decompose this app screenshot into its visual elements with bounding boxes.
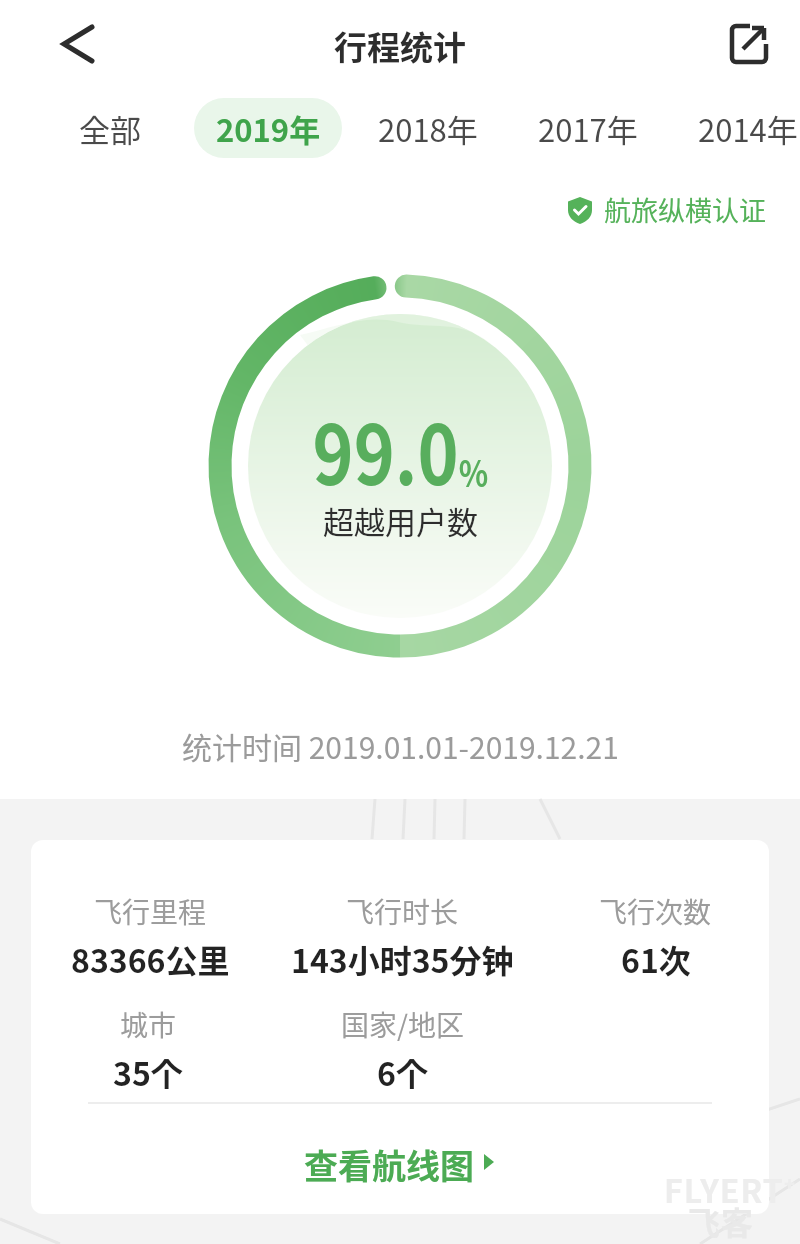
staticText: 飞行次数 (599, 891, 712, 932)
staticText: 查看航线图 (304, 1140, 474, 1184)
staticText: 全部 (79, 106, 141, 151)
button[interactable] (726, 22, 770, 66)
button[interactable]: 2014年 (668, 98, 800, 158)
button[interactable] (56, 22, 100, 66)
staticText: 统计时间 2019.01.01-2019.12.21 (182, 724, 619, 767)
staticText: 83366公里 (71, 936, 230, 982)
staticText: 飞客 (688, 1198, 755, 1244)
staticText: 99.0 (312, 390, 459, 509)
staticText: 行程统计 (334, 22, 466, 70)
staticText: FLYERT⁺ (664, 1166, 797, 1212)
staticText: % (459, 445, 488, 497)
staticText: 61次 (621, 936, 691, 982)
staticText: 6个 (377, 1049, 428, 1095)
staticText: 143小时35分钟 (291, 936, 514, 982)
button[interactable]: 查看航线图 (0, 1140, 800, 1184)
staticText: 35个 (113, 1049, 183, 1095)
staticText: 2014年 (698, 106, 798, 151)
staticText: 航旅纵横认证 (604, 190, 766, 229)
button[interactable]: 2018年 (348, 98, 508, 158)
staticText: 2018年 (378, 106, 478, 151)
staticText: 飞行时长 (346, 891, 459, 932)
button[interactable]: 2017年 (508, 98, 668, 158)
staticText: 国家/地区 (341, 1004, 464, 1045)
staticText: 超越用户数 (323, 498, 478, 543)
staticText: 2017年 (538, 106, 638, 151)
staticText: 2019年 (216, 106, 321, 151)
staticText: 飞行里程 (94, 891, 207, 932)
staticText: 城市 (120, 1004, 177, 1045)
button[interactable]: 全部 (30, 98, 190, 158)
button[interactable]: 2019年 (194, 98, 342, 158)
